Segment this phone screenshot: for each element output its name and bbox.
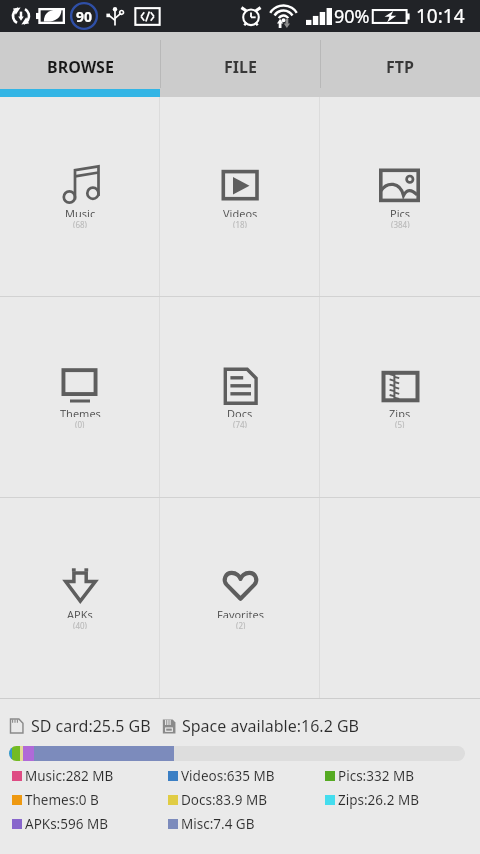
staticText: 10:14 [416,3,465,29]
button[interactable]: FILE [160,32,320,97]
staticText: Pics:332 MB [338,767,414,785]
staticText: Music [65,206,96,217]
staticText: SD card:25.5 GB [31,715,151,737]
staticText: Favorites [217,607,264,618]
staticText: FTP [386,56,414,78]
button[interactable]: Favorites [160,498,320,698]
button[interactable]: Music [0,97,160,296]
staticText: Space available:16.2 GB [182,715,360,737]
staticText: (40) [73,620,87,629]
staticText: Zips:26.2 MB [338,791,419,809]
staticText: (18) [233,219,247,228]
staticText: APKs [67,607,93,618]
staticText: Zips [389,406,411,417]
staticText: Pics [390,206,411,217]
button[interactable]: APKs [0,498,160,698]
staticText: Music:282 MB [25,767,114,785]
button[interactable]: Docs [160,297,320,497]
staticText: Themes:0 B [25,791,99,809]
button[interactable]: FTP [320,32,480,97]
staticText: Videos:635 MB [181,767,275,785]
staticText: Docs:83.9 MB [181,791,267,809]
staticText: (5) [395,419,405,428]
button[interactable]: Videos [160,97,320,296]
staticText: APKs:596 MB [25,815,108,833]
button[interactable]: Zips [320,297,480,497]
staticText: Misc:7.4 GB [181,815,255,833]
staticText: FILE [224,56,257,78]
staticText: (384) [391,219,410,228]
staticText: Videos [223,206,258,217]
button[interactable]: BROWSE [0,32,160,97]
button[interactable]: Themes [0,297,160,497]
staticText: (74) [233,419,247,428]
staticText: 90 [76,7,93,26]
staticText: (2) [236,620,246,629]
staticText: 90% [334,4,370,29]
staticText: Themes [60,406,101,417]
staticText: (68) [73,219,87,228]
staticText: (0) [75,419,85,428]
button[interactable]: Pics [320,97,480,296]
staticText: Docs [227,406,253,417]
staticText: BROWSE [47,56,114,78]
